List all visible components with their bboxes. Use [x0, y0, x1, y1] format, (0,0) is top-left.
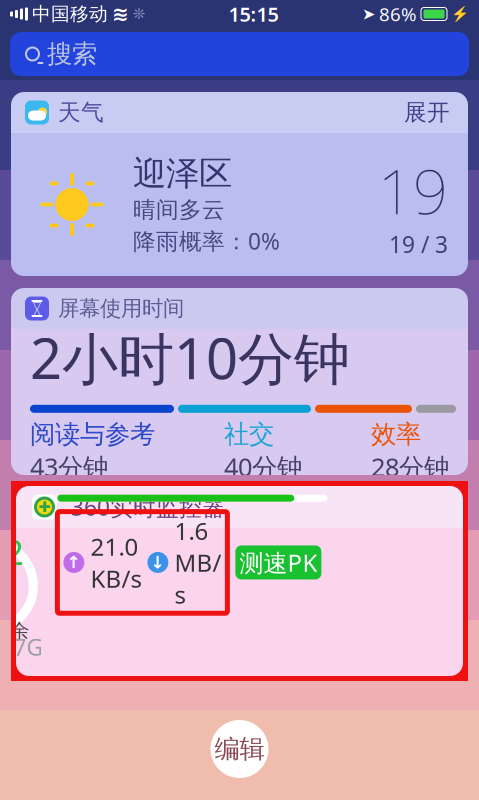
- staticText: 屏幕使用时间: [58, 295, 184, 322]
- staticText: 1.6MB/s: [174, 515, 221, 610]
- staticText: 社交: [224, 419, 274, 450]
- staticText: 19 / 3: [389, 229, 448, 259]
- staticText: 测速PK: [239, 546, 317, 578]
- staticText: 21.0KB/s: [90, 531, 141, 594]
- staticText: 效率: [371, 419, 421, 450]
- staticText: °C: [229, 412, 249, 437]
- staticText: 86%: [379, 2, 417, 26]
- staticText: 15.2G: [0, 529, 24, 621]
- staticText: ↑: [66, 553, 81, 572]
- button[interactable]: 搜索: [10, 32, 469, 76]
- staticText: 编辑: [214, 733, 264, 764]
- staticText: 展开: [404, 99, 450, 126]
- staticText: ↓: [150, 553, 165, 572]
- staticText: 天气: [58, 99, 104, 126]
- staticText: ▽: [33, 299, 41, 311]
- staticText: 17: [179, 400, 229, 459]
- staticText: 晴间多云: [133, 196, 225, 224]
- button[interactable]: 编辑: [210, 720, 268, 778]
- staticText: ❊: [133, 6, 145, 22]
- button[interactable]: 测速PK: [235, 545, 321, 579]
- staticText: △: [33, 305, 41, 317]
- staticText: 电池可用: [57, 459, 149, 486]
- staticText: 迎泽区: [133, 153, 232, 194]
- staticText: 40分钟: [224, 450, 302, 483]
- staticText: 360实时监控器: [71, 492, 225, 522]
- staticText: ➤: [362, 5, 375, 23]
- staticText: ≋: [112, 3, 129, 25]
- staticText: 15:15: [228, 1, 278, 27]
- staticText: 中国移动: [32, 2, 108, 25]
- staticText: 已用48.7G: [0, 632, 43, 662]
- staticText: 搜索: [47, 38, 97, 69]
- staticText: 43分钟: [30, 450, 108, 483]
- staticText: ✚: [38, 499, 50, 515]
- staticText: 18小时 7分钟: [190, 457, 327, 488]
- staticText: 28分钟: [371, 450, 449, 483]
- staticText: 19: [378, 150, 448, 231]
- staticText: 存储剩余: [0, 619, 29, 643]
- staticText: 2小时10分钟: [30, 320, 350, 395]
- staticText: 降雨概率：0%: [133, 226, 280, 256]
- button[interactable]: 展开: [400, 95, 454, 130]
- staticText: ⚡: [451, 6, 469, 22]
- staticText: 阅读与参考: [30, 419, 155, 450]
